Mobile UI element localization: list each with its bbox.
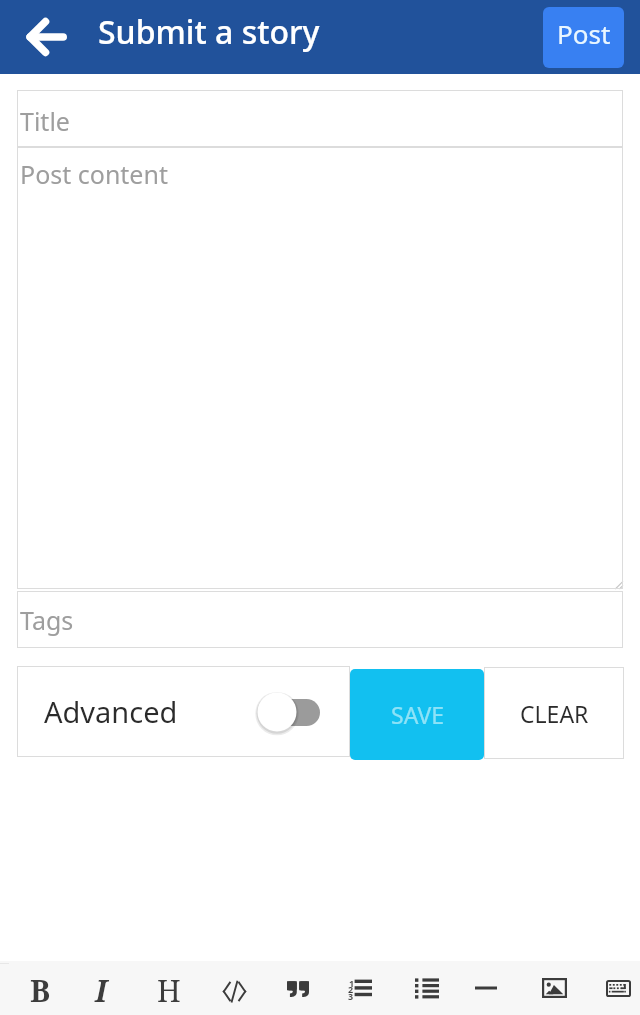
- staticText: B: [30, 970, 51, 1011]
- staticText: 3: [348, 990, 354, 1002]
- button[interactable]: Insert image: [519, 961, 583, 1015]
- staticText: Advanced: [44, 692, 178, 731]
- button[interactable]: Keyboard: [583, 961, 640, 1015]
- staticText: Title: [20, 104, 70, 138]
- button[interactable]: Heading: [135, 961, 199, 1015]
- staticText: SAVE: [391, 699, 444, 730]
- button[interactable]: CLEAR: [484, 667, 624, 759]
- button[interactable]: Tags: [17, 591, 623, 648]
- button[interactable]: Title: [17, 90, 623, 147]
- button[interactable]: Bold: [7, 961, 71, 1015]
- button[interactable]: Italic: [71, 961, 135, 1015]
- button[interactable]: Quote: [263, 961, 327, 1015]
- staticText: Tags: [20, 603, 74, 637]
- button[interactable]: SAVE: [350, 669, 484, 760]
- button[interactable]: Bulleted list: [391, 961, 455, 1015]
- staticText: Post content: [20, 157, 168, 191]
- staticText: H: [157, 970, 181, 1011]
- button[interactable]: Horizontal rule: [455, 961, 519, 1015]
- button[interactable]: Back: [0, 0, 92, 74]
- staticText: Post: [557, 16, 611, 51]
- button[interactable]: Post content: [17, 147, 623, 589]
- staticText: 2: [348, 983, 354, 995]
- button[interactable]: Post: [543, 7, 624, 68]
- button[interactable]: Code: [199, 961, 263, 1015]
- staticText: 1: [349, 977, 355, 989]
- staticText: I: [95, 970, 108, 1011]
- button[interactable]: Numbered list: [327, 961, 391, 1015]
- button[interactable]: Advanced toggle: [255, 690, 320, 734]
- staticText: Submit a story: [98, 10, 320, 54]
- staticText: CLEAR: [520, 698, 589, 729]
- button[interactable]: Advanced: [17, 666, 350, 757]
